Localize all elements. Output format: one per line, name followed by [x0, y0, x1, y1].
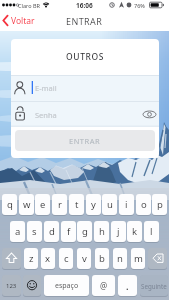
staticText: n	[117, 252, 123, 265]
staticText: .	[126, 280, 129, 292]
staticText: OUTROS	[66, 51, 105, 63]
staticText: m	[134, 252, 143, 265]
staticText: p	[157, 198, 163, 211]
button[interactable]: Senha	[11, 101, 159, 127]
staticText: q	[7, 198, 13, 211]
button[interactable]	[148, 248, 167, 269]
staticText: Seguinte	[141, 282, 167, 290]
button[interactable]: n	[113, 248, 127, 269]
button[interactable]: E-mail	[11, 75, 159, 101]
staticText: 123	[6, 282, 17, 290]
button[interactable]: .	[118, 275, 137, 296]
button[interactable]: w	[19, 194, 34, 215]
staticText: e	[40, 198, 46, 211]
staticText: 76%	[134, 2, 145, 9]
button[interactable]: espaço	[44, 275, 89, 296]
button[interactable]: c	[59, 248, 73, 269]
button[interactable]: f	[61, 221, 76, 242]
button[interactable]	[2, 248, 21, 269]
staticText: x	[45, 252, 51, 265]
staticText: b	[99, 252, 105, 265]
button[interactable]: t	[69, 194, 84, 215]
staticText: 16:06	[76, 1, 93, 10]
staticText: t	[75, 198, 79, 211]
staticText: z	[29, 252, 34, 265]
staticText: E-mail	[35, 83, 57, 93]
button[interactable]: 123	[2, 275, 21, 296]
staticText: @	[100, 280, 108, 291]
staticText: w	[23, 198, 31, 211]
staticText: s	[32, 225, 37, 238]
button[interactable]: o	[136, 194, 151, 215]
staticText: c	[64, 252, 69, 265]
staticText: v	[82, 252, 87, 265]
button[interactable]: j	[111, 221, 126, 242]
staticText: Voltar	[11, 15, 35, 27]
staticText: k	[132, 225, 138, 238]
staticText: g	[82, 225, 88, 238]
staticText: ENTRAR	[66, 15, 103, 27]
button[interactable]: Voltar	[0, 10, 42, 31]
button[interactable]: r	[52, 194, 67, 215]
staticText: j	[117, 225, 120, 238]
staticText: d	[49, 225, 55, 238]
button[interactable]: b	[95, 248, 109, 269]
button[interactable]: e	[35, 194, 50, 215]
button[interactable]: v	[77, 248, 91, 269]
staticText: o	[141, 198, 147, 211]
button[interactable]: l	[144, 221, 159, 242]
staticText: Claro BR	[18, 2, 40, 9]
button[interactable]	[23, 275, 41, 296]
staticText: l	[150, 225, 153, 238]
staticText: a	[15, 225, 21, 238]
button[interactable]: x	[41, 248, 55, 269]
staticText: Senha	[35, 110, 57, 120]
button[interactable]: z	[24, 248, 38, 269]
button[interactable]: @	[92, 275, 115, 296]
button[interactable]: y	[86, 194, 101, 215]
staticText: r	[58, 198, 62, 211]
staticText: ENTRAR	[69, 136, 101, 146]
button[interactable]: m	[131, 248, 145, 269]
staticText: y	[91, 198, 96, 211]
button[interactable]: Seguinte	[140, 275, 168, 296]
button[interactable]: u	[102, 194, 117, 215]
button[interactable]: q	[2, 194, 17, 215]
button[interactable]: s	[27, 221, 42, 242]
button[interactable]: p	[152, 194, 167, 215]
staticText: u	[107, 198, 113, 211]
button[interactable]: k	[127, 221, 142, 242]
staticText: espaço	[55, 281, 79, 291]
button[interactable]: a	[10, 221, 25, 242]
staticText: i	[125, 198, 128, 211]
button[interactable]: ENTRAR	[15, 130, 155, 151]
button[interactable]: d	[44, 221, 59, 242]
button[interactable]: g	[77, 221, 92, 242]
button[interactable]: h	[94, 221, 109, 242]
staticText: h	[99, 225, 105, 238]
staticText: f	[67, 225, 71, 238]
button[interactable]: i	[119, 194, 134, 215]
